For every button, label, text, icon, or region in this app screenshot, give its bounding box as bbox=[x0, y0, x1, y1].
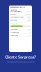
staticText: Cliente Sorpresa? bbox=[5, 54, 36, 60]
staticText: 04/09 bbox=[26, 13, 31, 15]
staticText: A-12 bbox=[27, 10, 31, 12]
staticText: 18:20 bbox=[27, 16, 31, 18]
staticText: 9,1 bbox=[29, 34, 31, 36]
staticText: Incidencias bbox=[10, 31, 19, 33]
staticText: Progreso bbox=[10, 23, 18, 25]
staticText: 1 bbox=[30, 31, 31, 33]
staticText: Duración bbox=[10, 19, 17, 21]
staticText: 6/8 bbox=[28, 28, 31, 31]
staticText: Fecha bbox=[10, 13, 15, 15]
staticText: Valoración bbox=[10, 34, 18, 36]
staticText: Secciones bbox=[10, 28, 18, 31]
staticText: Resumen de la visita bbox=[10, 5, 24, 11]
staticText: Hora de entrada bbox=[10, 16, 23, 18]
staticText: Evalúa la experiencia real de tu negocio bbox=[6, 61, 34, 63]
staticText: Establecimiento bbox=[10, 10, 22, 12]
staticText: 32 min bbox=[27, 19, 31, 21]
